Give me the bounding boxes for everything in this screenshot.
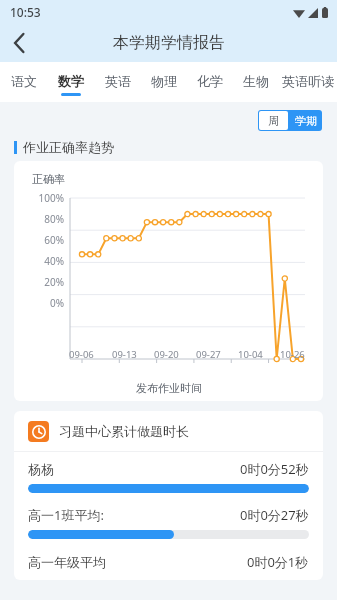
staticText: 化学 bbox=[197, 73, 223, 89]
staticText: 英语 bbox=[105, 73, 131, 89]
staticText: 作业正确率趋势 bbox=[23, 139, 114, 155]
staticText: 40% bbox=[26, 254, 64, 268]
staticText: 英语听读 bbox=[282, 73, 334, 89]
staticText: 正确率 bbox=[32, 172, 65, 186]
staticText: 10:53 bbox=[10, 4, 41, 20]
staticText: 09-13 bbox=[112, 348, 137, 361]
button[interactable]: 英语听读 bbox=[279, 62, 337, 102]
staticText: 0时0分52秒 bbox=[240, 460, 309, 478]
staticText: 周 bbox=[268, 114, 279, 128]
button[interactable]: 学期 bbox=[289, 110, 322, 131]
staticText: 09-27 bbox=[196, 348, 221, 361]
staticText: 10-26 bbox=[280, 348, 305, 361]
button[interactable]: 生物 bbox=[233, 62, 279, 102]
staticText: 0时0分27秒 bbox=[240, 506, 309, 524]
staticText: 习题中心累计做题时长 bbox=[59, 423, 189, 439]
staticText: 语文 bbox=[11, 73, 37, 89]
staticText: 发布作业时间 bbox=[136, 381, 202, 395]
button[interactable]: 英语 bbox=[94, 62, 141, 102]
staticText: 09-06 bbox=[69, 348, 94, 361]
staticText: 80% bbox=[26, 212, 64, 226]
staticText: 高一1班平均: bbox=[28, 506, 104, 524]
staticText: 20% bbox=[26, 275, 64, 289]
staticText: 100% bbox=[26, 191, 64, 205]
button[interactable]: 物理 bbox=[141, 62, 187, 102]
button[interactable]: 化学 bbox=[187, 62, 233, 102]
staticText: 杨杨 bbox=[28, 461, 54, 477]
staticText: 09-20 bbox=[154, 348, 179, 361]
staticText: 高一年级平均 bbox=[28, 554, 106, 570]
staticText: 本学期学情报告 bbox=[113, 33, 225, 53]
button[interactable]: 数学 bbox=[47, 62, 94, 102]
staticText: 生物 bbox=[243, 73, 269, 89]
staticText: 0% bbox=[26, 296, 64, 310]
staticText: 学期 bbox=[295, 114, 317, 128]
staticText: 10-04 bbox=[238, 348, 263, 361]
staticText: 60% bbox=[26, 233, 64, 247]
button[interactable]: 语文 bbox=[0, 62, 47, 102]
staticText: 0时0分1秒 bbox=[247, 553, 309, 571]
button[interactable]: Back bbox=[0, 24, 38, 62]
button[interactable]: 周 bbox=[259, 111, 288, 130]
staticText: 数学 bbox=[58, 73, 84, 89]
staticText: 物理 bbox=[151, 73, 177, 89]
